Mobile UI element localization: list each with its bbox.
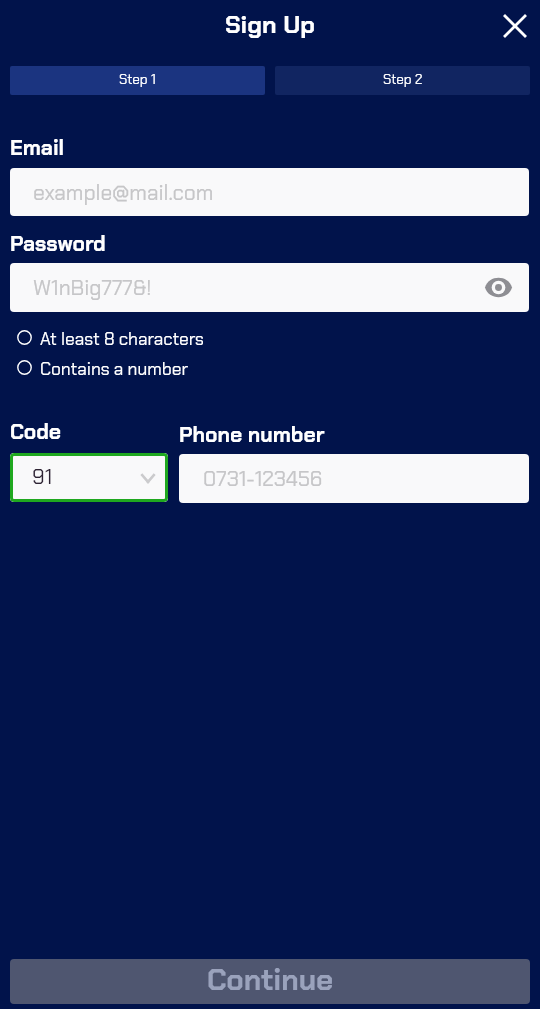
button[interactable]: Close [495,6,535,46]
staticText: 0731-123456 [203,465,323,492]
button[interactable]: Contains a number [17,358,189,376]
button[interactable]: At least 8 characters [17,328,204,346]
staticText: Step 1 [119,71,156,89]
staticText: Continue [207,961,334,999]
staticText: Email [10,134,65,161]
staticText: example@mail.com [33,179,214,206]
button[interactable]: Step 2 [275,66,530,95]
staticText: Password [10,230,106,257]
button[interactable]: Show password [478,267,518,307]
button[interactable]: Continue [10,959,530,1004]
staticText: 91 [32,463,53,490]
button[interactable]: W1nBig777&! [10,263,529,312]
staticText: Code [10,418,62,445]
button[interactable]: example@mail.com [10,168,529,216]
button[interactable]: Country code [10,453,168,502]
staticText: At least 8 characters [40,328,204,346]
staticText: Sign Up [0,9,540,41]
button[interactable]: 0731-123456 [179,454,529,503]
staticText: Contains a number [40,358,189,376]
staticText: Phone number [179,421,325,448]
staticText: Step 2 [383,71,423,89]
button[interactable]: Step 1 [10,66,265,95]
staticText: W1nBig777&! [33,274,152,301]
